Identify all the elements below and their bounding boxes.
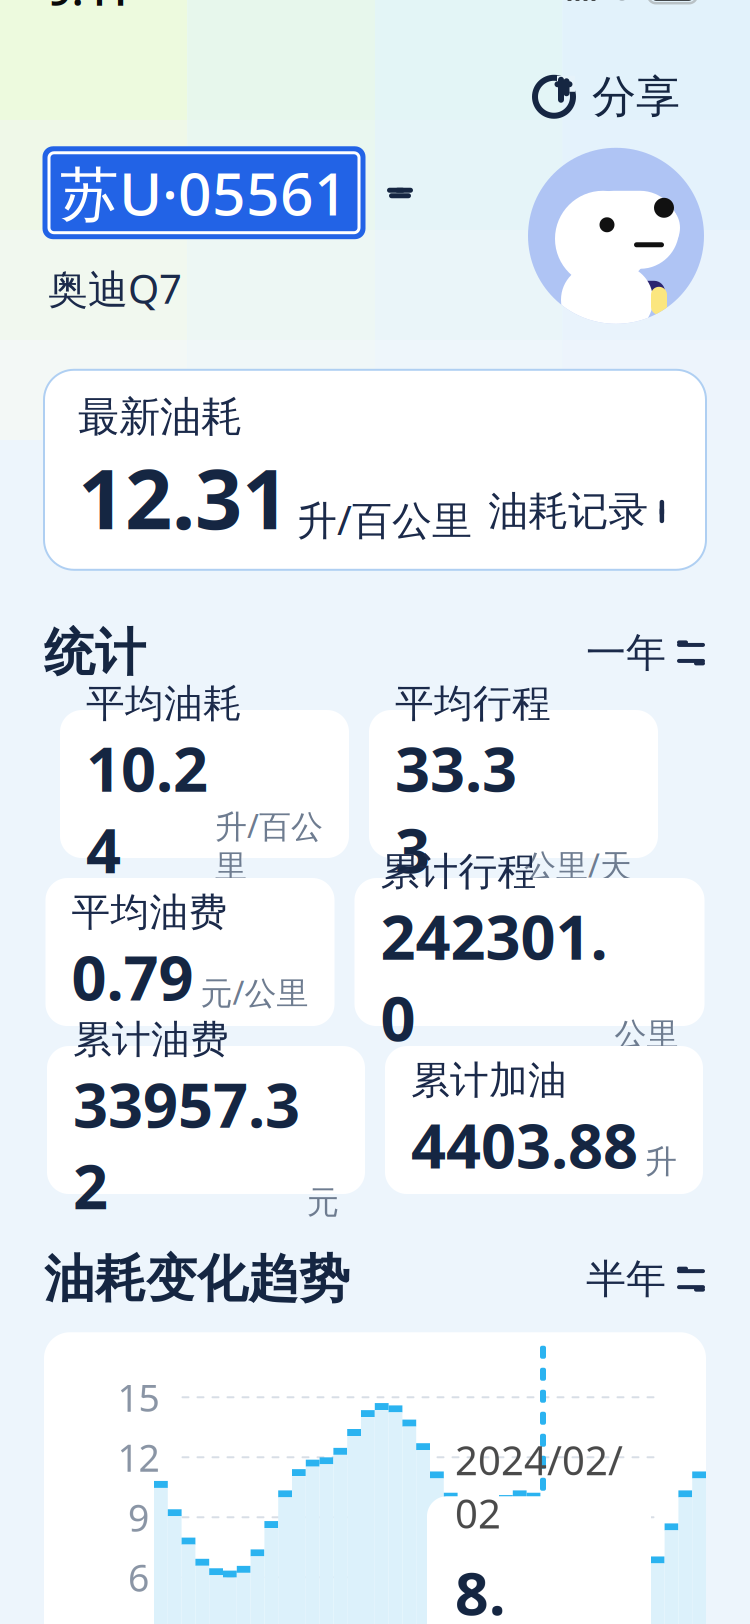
button[interactable]: 一年 — [576, 622, 706, 683]
staticText: 奥迪Q7 — [48, 262, 182, 315]
staticText: 8.96 — [455, 1553, 523, 1624]
staticText: 12 — [117, 1432, 159, 1482]
button[interactable]: 累计行程 — [354, 878, 704, 1026]
staticText: 油耗记录 — [488, 487, 648, 536]
staticText: 0.79 — [71, 936, 193, 1017]
button[interactable]: 累计油费 — [47, 1046, 365, 1194]
staticText: 半年 — [586, 1255, 666, 1304]
staticText: 2024/02/02 — [455, 1433, 623, 1539]
staticText: 累计加油 — [411, 1057, 567, 1104]
staticText: 累计行程 — [380, 848, 536, 895]
staticText: 33.33 — [395, 727, 517, 890]
staticText: 累计油费 — [73, 1016, 229, 1063]
button[interactable]: 平均油耗 — [60, 710, 349, 858]
button[interactable]: 分享 — [520, 64, 690, 130]
staticText: 分享 — [592, 70, 680, 124]
staticText: 9:41 — [48, 0, 131, 17]
staticText: 升 — [645, 1142, 677, 1181]
staticText: 油耗变化趋势 — [44, 1248, 350, 1310]
button[interactable]: 累计加油 — [385, 1046, 703, 1194]
staticText: 4403.88 — [411, 1104, 638, 1185]
button[interactable]: 油耗记录 — [480, 479, 672, 544]
staticText: 6 — [128, 1552, 149, 1602]
button[interactable]: 切换车辆 苏U·05561 — [44, 148, 414, 238]
staticText: 10.24 — [86, 727, 208, 890]
staticText: 统计 — [44, 622, 146, 684]
staticText: 升/百公里 — [215, 804, 323, 886]
button[interactable]: 平均行程 — [369, 710, 658, 858]
staticText: 平均油耗 — [86, 680, 242, 727]
staticText: 元/公里 — [200, 971, 308, 1013]
staticText: 12.31 — [78, 442, 289, 552]
button[interactable]: 半年 — [576, 1249, 706, 1310]
staticText: 平均行程 — [395, 680, 551, 727]
staticText: 一年 — [586, 628, 666, 677]
staticText: 升/百公里 — [297, 493, 472, 546]
staticText: 公里 — [614, 1015, 678, 1054]
staticText: 元 — [307, 1183, 339, 1222]
staticText: 15 — [117, 1372, 159, 1422]
staticText: 9 — [128, 1492, 149, 1542]
staticText: 平均油费 — [71, 889, 227, 936]
button[interactable]: 平均油费 — [45, 878, 334, 1026]
staticText: 苏U·05561 — [60, 154, 348, 232]
staticText: 最新油耗 — [78, 391, 242, 442]
staticText: 242301.0 — [380, 895, 607, 1058]
staticText: 33957.32 — [73, 1063, 300, 1226]
staticText: 公里/天 — [524, 844, 632, 886]
